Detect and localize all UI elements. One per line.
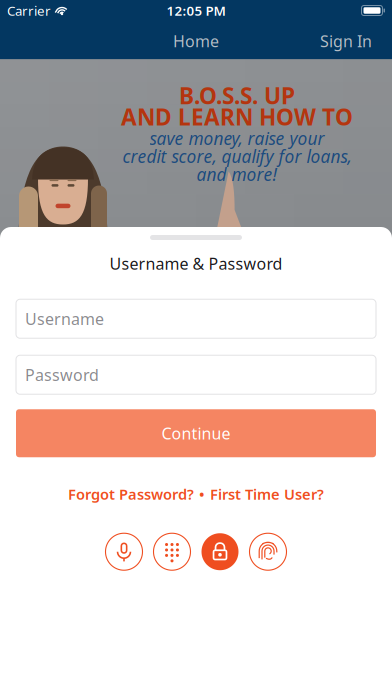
button[interactable]: Voice sign in [100, 530, 147, 574]
staticText: First Time User? [210, 484, 324, 504]
staticText: Carrier [7, 2, 51, 19]
staticText: 12:05 PM [166, 2, 225, 19]
button[interactable]: Password [16, 355, 376, 394]
staticText: • [199, 484, 205, 504]
staticText: Password [25, 364, 99, 385]
button[interactable]: Password sign in [196, 530, 243, 574]
staticText: credit score, qualify for loans, [122, 145, 351, 168]
button[interactable]: Sign In [304, 22, 392, 60]
staticText: B.O.S.S. UP [179, 80, 295, 111]
button[interactable]: Forgot Password? [68, 484, 194, 504]
button[interactable]: Keypad sign in [148, 530, 195, 574]
button[interactable]: Continue [16, 409, 376, 457]
staticText: Username [25, 308, 104, 329]
staticText: Continue [161, 423, 230, 444]
staticText: save money, raise your [149, 127, 324, 150]
staticText: AND LEARN HOW TO [121, 102, 353, 132]
staticText: Username & Password [109, 253, 282, 274]
button[interactable]: First Time User? [210, 484, 324, 504]
staticText: Home [173, 30, 219, 52]
staticText: and more! [196, 163, 277, 186]
staticText: Sign In [320, 30, 372, 52]
staticText: Forgot Password? [68, 484, 194, 504]
button[interactable]: Username [16, 299, 376, 338]
button[interactable]: Touch ID sign in [244, 530, 291, 574]
button[interactable]: Home [159, 22, 233, 60]
